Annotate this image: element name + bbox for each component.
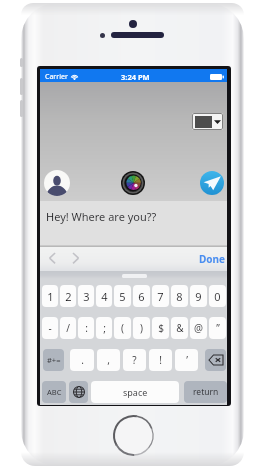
button[interactable]: 2 [60, 285, 76, 307]
staticText: / [66, 321, 70, 335]
button[interactable]: 0 [209, 285, 226, 307]
button[interactable]: Switch keyboard [69, 381, 88, 403]
button[interactable]: Done [197, 247, 228, 271]
button[interactable]: Camera [121, 171, 145, 195]
button[interactable]: ) [133, 317, 150, 339]
staticText: , [107, 353, 110, 367]
button[interactable]: Hey! Where are you?? [40, 201, 227, 246]
staticText: 7 [157, 289, 164, 304]
staticText: Done [199, 252, 226, 266]
button[interactable]: & [171, 317, 188, 339]
button[interactable]: 1 [42, 285, 58, 307]
staticText: ) [140, 321, 143, 335]
button[interactable]: 7 [152, 285, 169, 307]
staticText: 6 [138, 289, 145, 304]
staticText: return [193, 386, 219, 398]
staticText: 4 [101, 289, 108, 304]
button[interactable]: ’ [175, 349, 198, 371]
staticText: ? [132, 353, 137, 367]
button[interactable]: 5 [114, 285, 131, 307]
button[interactable]: Backspace [205, 349, 226, 371]
staticText: 3 [83, 289, 90, 304]
staticText: : [85, 321, 88, 335]
button[interactable]: space [91, 381, 179, 403]
button[interactable]: 8 [171, 285, 188, 307]
button[interactable]: ( [114, 317, 131, 339]
staticText: . [81, 353, 84, 367]
staticText: 9 [195, 289, 202, 304]
button[interactable]: #+= [43, 349, 64, 371]
staticText: ( [121, 321, 124, 335]
button[interactable]: ; [96, 317, 112, 339]
button[interactable]: ” [209, 317, 226, 339]
staticText: 3:24 PM [121, 72, 150, 82]
staticText: 1 [47, 289, 54, 304]
staticText: & [176, 321, 184, 335]
staticText: ABC [47, 387, 62, 397]
button[interactable]: 6 [133, 285, 150, 307]
staticText: 2 [65, 289, 72, 304]
button[interactable]: : [78, 317, 94, 339]
staticText: #+= [47, 355, 61, 365]
staticText: ; [103, 321, 106, 335]
button[interactable]: @ [190, 317, 207, 339]
button[interactable]: ! [149, 349, 172, 371]
button[interactable]: Send message [200, 171, 224, 195]
button[interactable]: Home [113, 415, 154, 456]
staticText: 5 [119, 289, 126, 304]
staticText: 8 [176, 289, 183, 304]
staticText: ! [159, 353, 162, 367]
button[interactable]: - [42, 317, 58, 339]
button[interactable]: , [97, 349, 120, 371]
button[interactable]: return [184, 381, 227, 403]
staticText: Carrier [45, 72, 68, 82]
button[interactable]: Next field [73, 251, 87, 267]
button[interactable]: 4 [96, 285, 112, 307]
button[interactable]: ABC [42, 381, 66, 403]
button[interactable]: Contact avatar [44, 170, 70, 196]
staticText: 0 [214, 289, 221, 304]
staticText: $ [158, 321, 164, 335]
staticText: space [123, 386, 148, 398]
button[interactable]: 9 [190, 285, 207, 307]
button[interactable]: 3 [78, 285, 94, 307]
button[interactable]: . [70, 349, 94, 371]
button[interactable]: $ [152, 317, 169, 339]
button[interactable]: ? [123, 349, 146, 371]
staticText: - [48, 321, 52, 335]
button[interactable]: Select colour [192, 113, 223, 130]
staticText: @ [194, 321, 203, 335]
staticText: ” [216, 321, 220, 335]
button[interactable]: / [60, 317, 76, 339]
staticText: ’ [186, 353, 188, 367]
button[interactable]: Previous field [44, 251, 58, 267]
staticText: Hey! Where are you?? [46, 209, 157, 224]
